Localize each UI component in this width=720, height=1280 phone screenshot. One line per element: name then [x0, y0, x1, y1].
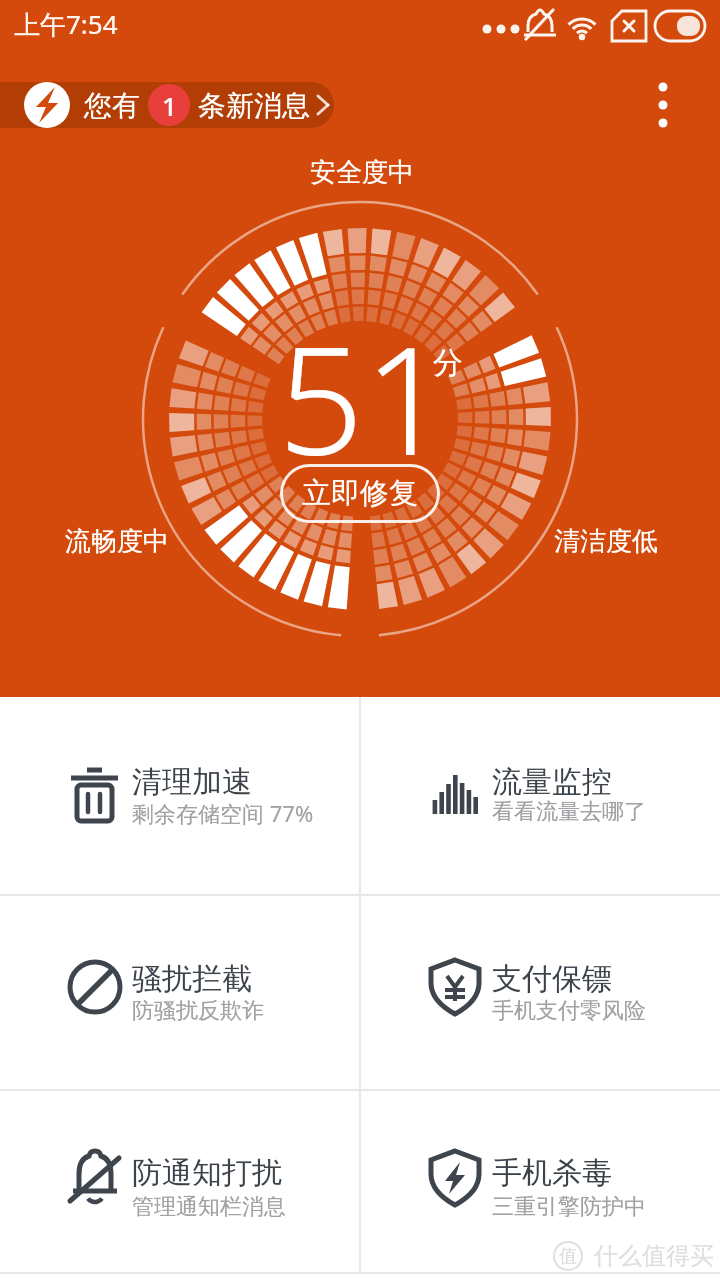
staticText: 流畅度中: [65, 525, 169, 558]
staticText: 清洁度低: [554, 525, 658, 558]
staticText: 手机支付零风险: [492, 997, 646, 1025]
staticText: 防通知打扰: [132, 1154, 282, 1192]
staticText: 手机杀毒: [492, 1154, 612, 1192]
button[interactable]: 支付保镖: [360, 895, 720, 1089]
staticText: 安全度中: [310, 156, 414, 189]
button[interactable]: 手机杀毒: [360, 1090, 720, 1273]
staticText: 您有: [84, 88, 140, 123]
staticText: 骚扰拦截: [132, 960, 252, 998]
staticText: 立即修复: [302, 475, 418, 512]
button[interactable]: 清理加速: [0, 697, 360, 894]
staticText: 三重引擎防护中: [492, 1193, 646, 1221]
staticText: 支付保镖: [492, 960, 612, 998]
staticText: 什么值得买: [594, 1241, 714, 1271]
staticText: 值: [559, 1245, 577, 1268]
staticText: 上午7:54: [14, 6, 118, 42]
staticText: 51: [278, 295, 450, 499]
staticText: 防骚扰反欺诈: [132, 997, 264, 1025]
staticText: 流量监控: [492, 763, 612, 801]
button[interactable]: 立即修复: [280, 464, 440, 523]
button[interactable]: 您有: [0, 82, 334, 128]
staticText: 条新消息: [198, 88, 310, 123]
staticText: 清理加速: [132, 763, 252, 801]
staticText: 1: [162, 88, 177, 123]
staticText: 分: [433, 344, 463, 382]
staticText: 管理通知栏消息: [132, 1193, 286, 1221]
staticText: 看看流量去哪了: [492, 798, 646, 826]
button[interactable]: 骚扰拦截: [0, 895, 360, 1089]
button[interactable]: [639, 81, 687, 129]
button[interactable]: 防通知打扰: [0, 1090, 360, 1273]
button[interactable]: 流量监控: [360, 697, 720, 894]
staticText: 剩余存储空间 77%: [132, 798, 314, 828]
